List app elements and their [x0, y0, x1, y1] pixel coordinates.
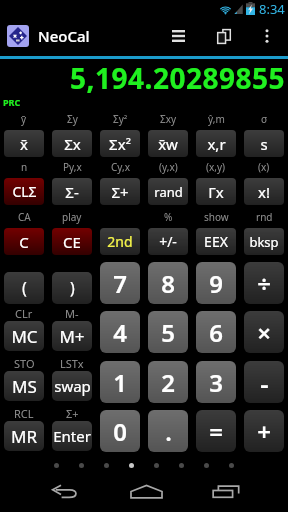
staticText: x̄ [20, 134, 28, 154]
staticText: 7 [113, 267, 127, 300]
button[interactable]: x̄ [4, 130, 44, 157]
staticText: ÷ [257, 267, 271, 300]
button[interactable]: ( [4, 272, 44, 304]
button[interactable]: . [148, 410, 188, 452]
staticText: play [62, 210, 82, 224]
button[interactable]: CE [52, 228, 92, 255]
button[interactable]: ÷ [244, 262, 284, 304]
staticText: +/- [159, 232, 177, 251]
button[interactable]: 5 [148, 311, 188, 353]
button[interactable]: 7 [100, 262, 140, 304]
staticText: Py,x [63, 160, 82, 174]
button[interactable]: C [4, 228, 44, 255]
button[interactable]: 3 [196, 361, 236, 403]
staticText: ȳ [21, 112, 27, 126]
button[interactable]: 6 [196, 311, 236, 353]
staticText: 5,194.20289855 [70, 59, 286, 97]
button[interactable]: 4 [100, 311, 140, 353]
staticText: 6 [209, 316, 223, 349]
staticText: C [19, 232, 29, 252]
staticText: Σx [64, 134, 81, 154]
button[interactable]: Enter [52, 421, 92, 451]
staticText: x̄w [158, 134, 178, 154]
staticText: Cy,x [111, 160, 130, 174]
staticText: x! [258, 182, 270, 202]
staticText: CA [18, 210, 31, 224]
button[interactable]: 2 [148, 361, 188, 403]
button[interactable]: More options [246, 17, 288, 55]
button[interactable]: Recent apps [186, 471, 266, 512]
button[interactable]: = [196, 410, 236, 452]
button[interactable]: 0 [100, 410, 140, 452]
staticText: M- [65, 306, 79, 320]
button[interactable]: swap [52, 371, 92, 401]
button[interactable]: MC [4, 321, 44, 351]
button[interactable]: rand [148, 178, 188, 205]
button[interactable]: MS [4, 371, 44, 401]
staticText: 2nd [107, 232, 133, 251]
button[interactable]: Γx [196, 178, 236, 205]
button[interactable]: M+ [52, 321, 92, 351]
button[interactable]: Σx [52, 130, 92, 157]
staticText: (x) [258, 160, 270, 174]
staticText: MS [12, 375, 37, 398]
button[interactable]: EEX [196, 228, 236, 255]
staticText: × [257, 316, 271, 349]
staticText: MC [11, 325, 38, 348]
staticText: (y,x) [159, 160, 178, 174]
staticText: MR [11, 425, 37, 448]
staticText: % [164, 210, 173, 224]
button[interactable]: +/- [148, 228, 188, 255]
staticText: rnd [256, 210, 273, 224]
button[interactable]: MR [4, 421, 44, 451]
staticText: LSTx [60, 356, 84, 370]
staticText: CLr [15, 306, 33, 320]
button[interactable]: s [244, 130, 284, 157]
staticText: 8:34 [259, 0, 285, 17]
staticText: ( [22, 277, 27, 299]
staticText: 9 [209, 267, 223, 300]
staticText: Σxy [160, 112, 177, 126]
staticText: bksp [249, 233, 279, 251]
button[interactable]: 1 [100, 361, 140, 403]
staticText: - [260, 365, 269, 400]
staticText: 2 [161, 366, 175, 399]
button[interactable]: CLΣ [4, 178, 44, 205]
button[interactable]: 2nd [100, 228, 140, 255]
staticText: rand [154, 183, 183, 201]
staticText: (x,y) [206, 160, 226, 174]
staticText: 5 [161, 316, 175, 349]
button[interactable]: × [244, 311, 284, 353]
button[interactable]: Back [24, 471, 104, 512]
button[interactable]: NeoCal [7, 25, 29, 47]
staticText: swap [54, 376, 91, 396]
staticText: x,r [207, 134, 226, 154]
staticText: RCL [14, 406, 34, 420]
staticText: CLΣ [12, 182, 37, 201]
staticText: ) [70, 277, 75, 299]
staticText: Σ+ [111, 182, 129, 202]
staticText: = [209, 415, 223, 448]
staticText: Σy [67, 112, 78, 126]
button[interactable]: + [244, 410, 284, 452]
button[interactable]: x,r [196, 130, 236, 157]
staticText: NeoCal [38, 26, 90, 46]
button[interactable]: Menu [156, 17, 201, 55]
button[interactable]: ) [52, 272, 92, 304]
button[interactable]: x̄w [148, 130, 188, 157]
button[interactable]: - [244, 361, 284, 403]
staticText: s [260, 134, 268, 154]
staticText: n [21, 160, 28, 174]
staticText: 0 [113, 415, 127, 448]
button[interactable]: bksp [244, 228, 284, 255]
staticText: CE [63, 232, 81, 252]
button[interactable]: Σ- [52, 178, 92, 205]
button[interactable]: Σ+ [100, 178, 140, 205]
button[interactable]: x! [244, 178, 284, 205]
button[interactable]: Home [106, 471, 186, 512]
staticText: Enter [53, 426, 91, 446]
button[interactable]: Σx² [100, 130, 140, 157]
button[interactable]: 9 [196, 262, 236, 304]
button[interactable]: Copy [201, 17, 246, 55]
button[interactable]: 8 [148, 262, 188, 304]
